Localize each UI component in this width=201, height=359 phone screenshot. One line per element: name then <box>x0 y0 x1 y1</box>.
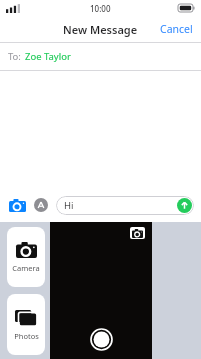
button[interactable]: Take photo <box>91 329 112 350</box>
button[interactable]: Hi <box>56 196 194 215</box>
button[interactable]: Flip camera <box>130 227 145 239</box>
staticText: Photos <box>14 331 39 341</box>
staticText: 10:00 <box>90 3 111 14</box>
staticText: Zoe Taylor <box>25 50 71 63</box>
staticText: Hi <box>64 199 74 212</box>
staticText: Camera <box>12 263 40 273</box>
button[interactable]: Photos <box>7 294 45 355</box>
button[interactable]: Send <box>177 198 192 213</box>
button[interactable]: To: <box>0 43 201 70</box>
button[interactable]: Camera viewfinder <box>50 222 152 359</box>
staticText: New Message <box>63 22 138 37</box>
staticText: Cancel <box>160 22 193 36</box>
staticText: To: <box>8 50 21 63</box>
button[interactable]: Camera <box>7 227 45 287</box>
button[interactable]: Apps <box>32 196 50 214</box>
button[interactable]: Cancel <box>152 18 201 40</box>
button[interactable]: Camera <box>7 195 27 215</box>
